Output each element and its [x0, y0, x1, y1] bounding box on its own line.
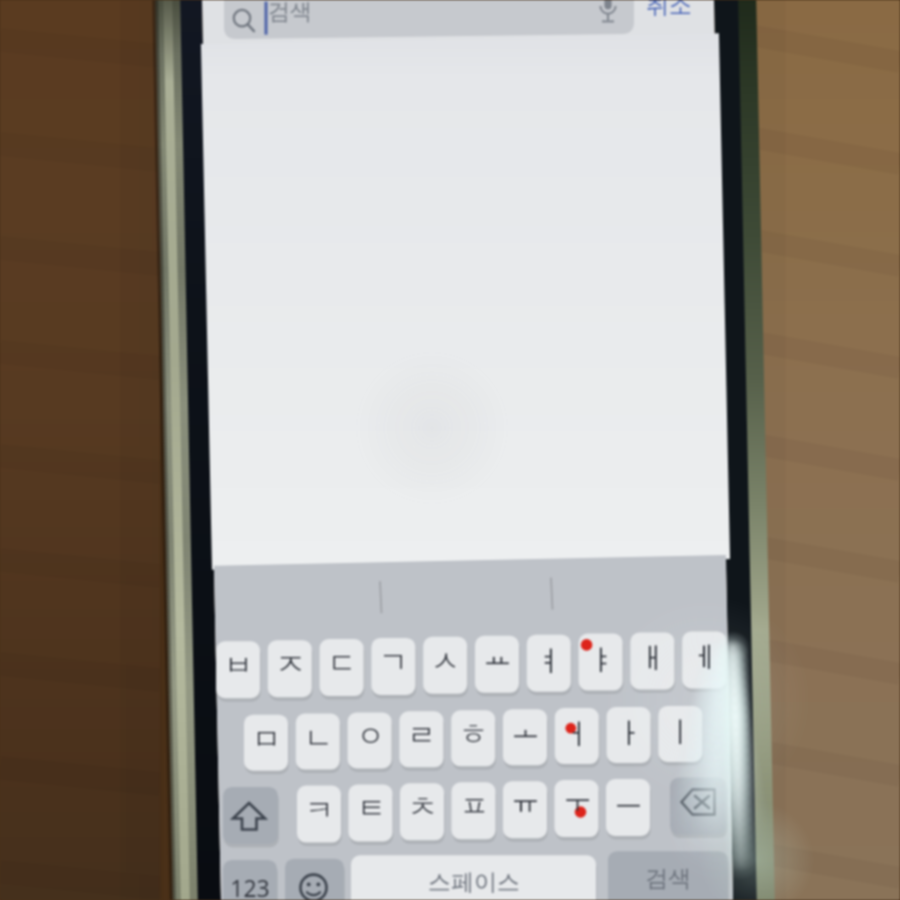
staticText: ㅗ	[511, 710, 540, 747]
button[interactable]: ㅇ	[348, 712, 392, 768]
staticText: ㄹ	[407, 717, 436, 754]
staticText: ㅛ	[483, 637, 512, 674]
button[interactable]: 검색	[608, 851, 728, 900]
staticText: 123	[230, 872, 270, 900]
button[interactable]: Emoji keyboard	[285, 859, 344, 900]
staticText: ㅕ	[535, 643, 564, 680]
staticText: ㅜ	[563, 781, 592, 818]
button[interactable]: ㄴ	[296, 714, 340, 770]
staticText: ㅅ	[431, 643, 460, 680]
button[interactable]: ㅍ	[452, 782, 496, 839]
button[interactable]: ㅌ	[349, 784, 393, 841]
button[interactable]: 스페이스	[351, 855, 596, 900]
button[interactable]: ㅛ	[475, 636, 519, 693]
button[interactable]: ㄹ	[399, 711, 443, 767]
staticText: ㅁ	[252, 721, 281, 758]
button[interactable]: ㄱ	[371, 638, 415, 695]
button[interactable]: ㅑ	[579, 634, 623, 691]
button[interactable]: ㅐ	[630, 632, 674, 689]
button[interactable]: ㅎ	[451, 710, 495, 766]
staticText: ㄴ	[304, 720, 333, 757]
button[interactable]: 123	[223, 860, 277, 900]
staticText: ㅌ	[357, 790, 386, 827]
staticText: ㅑ	[587, 642, 616, 679]
button[interactable]: ㅊ	[400, 783, 444, 840]
staticText: ㅐ	[638, 640, 667, 677]
staticText: ㅇ	[356, 718, 385, 755]
staticText: ㅂ	[224, 647, 253, 684]
button[interactable]: Backspace	[670, 778, 727, 835]
staticText: ㄷ	[328, 645, 357, 682]
staticText: ㄱ	[379, 644, 408, 681]
staticText: 검색	[268, 0, 312, 26]
staticText: ㅊ	[408, 789, 437, 826]
button[interactable]: 취소	[641, 0, 697, 24]
button[interactable]: ㅋ	[297, 786, 341, 843]
staticText: 스페이스	[428, 868, 520, 897]
staticText: 취소	[646, 0, 692, 20]
button[interactable]: ㅂ	[216, 641, 260, 698]
button[interactable]: ㅗ	[503, 709, 547, 765]
button[interactable]: 검색	[224, 0, 633, 42]
button[interactable]: ㅕ	[527, 635, 571, 692]
staticText: 검색	[645, 864, 691, 893]
staticText: ㅍ	[460, 788, 489, 825]
button[interactable]: ㅠ	[503, 781, 547, 838]
staticText: ㅡ	[614, 780, 643, 817]
staticText: ㅏ	[615, 715, 644, 752]
button[interactable]: ㅣ	[658, 706, 702, 762]
staticText: ㅎ	[459, 716, 488, 753]
button[interactable]: ㅡ	[606, 779, 650, 836]
button[interactable]: ㅏ	[607, 707, 651, 763]
staticText: ㅓ	[563, 716, 592, 753]
button[interactable]: ㅁ	[244, 715, 288, 771]
button[interactable]: ㄷ	[320, 639, 364, 696]
button[interactable]: ㅔ	[682, 631, 726, 688]
staticText: ㅋ	[305, 792, 334, 829]
button[interactable]: ㅈ	[268, 640, 312, 697]
button[interactable]: ㅅ	[423, 637, 467, 694]
staticText: ㅔ	[690, 639, 719, 676]
staticText: ㅠ	[511, 782, 540, 819]
button[interactable]: Shift	[223, 787, 278, 844]
button[interactable]: ㅓ	[555, 708, 599, 764]
staticText: ㅈ	[276, 646, 305, 683]
staticText: ㅣ	[666, 714, 695, 751]
button[interactable]: ㅜ	[555, 780, 599, 837]
